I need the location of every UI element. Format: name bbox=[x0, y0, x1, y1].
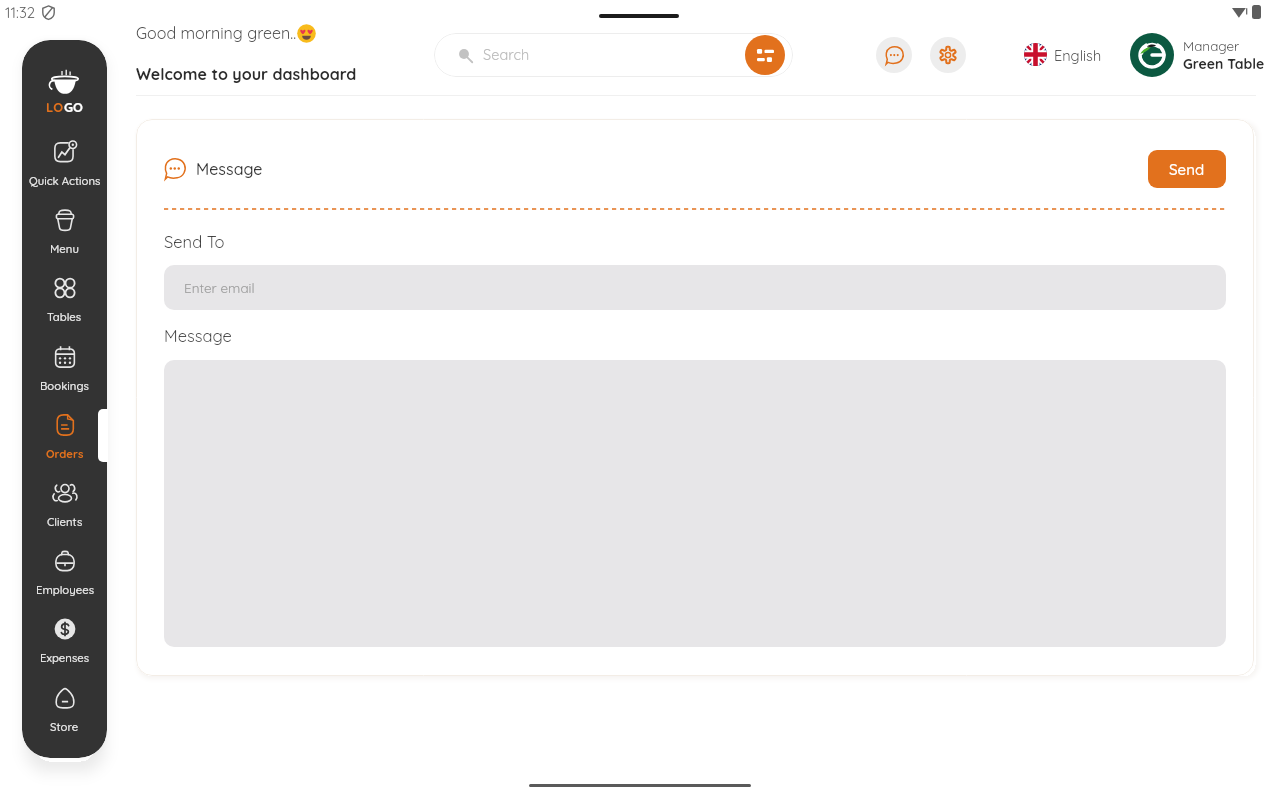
staticText: Search bbox=[483, 45, 530, 63]
staticText: Quick Actions bbox=[29, 174, 101, 188]
button[interactable]: Send bbox=[1148, 150, 1226, 188]
staticText: LO bbox=[46, 99, 64, 115]
staticText: Tables bbox=[47, 310, 82, 324]
button[interactable]: Filter bbox=[745, 35, 785, 75]
staticText: 11:32 bbox=[5, 3, 36, 22]
staticText: Message bbox=[164, 325, 232, 346]
staticText: Enter email bbox=[184, 279, 255, 296]
staticText: Bookings bbox=[40, 379, 89, 393]
staticText: Send To bbox=[164, 231, 225, 252]
staticText: Orders bbox=[46, 447, 84, 461]
button[interactable]: Bookings bbox=[22, 344, 107, 412]
button[interactable]: Tables bbox=[22, 275, 107, 343]
staticText: Send bbox=[1169, 160, 1205, 179]
staticText: Clients bbox=[47, 515, 83, 529]
button[interactable]: Clients bbox=[22, 480, 107, 548]
button[interactable]: English bbox=[1024, 43, 1102, 66]
button[interactable]: Orders bbox=[22, 412, 107, 480]
button[interactable]: Employees bbox=[22, 548, 107, 616]
staticText: English bbox=[1054, 46, 1102, 64]
staticText: Welcome to your dashboard bbox=[136, 64, 357, 84]
staticText: Manager bbox=[1183, 37, 1240, 54]
staticText: GO bbox=[64, 99, 83, 115]
button[interactable]: Menu bbox=[22, 207, 107, 275]
button[interactable]: Expenses bbox=[22, 616, 107, 684]
staticText: Green Table bbox=[1183, 55, 1265, 73]
staticText: Menu bbox=[50, 242, 79, 256]
button[interactable]: Search bbox=[434, 33, 793, 77]
staticText: Employees bbox=[36, 583, 94, 597]
staticText: Store bbox=[50, 720, 79, 734]
button[interactable]: Enter email bbox=[164, 265, 1226, 310]
button[interactable]: Settings bbox=[930, 37, 966, 73]
staticText: Expenses bbox=[40, 651, 90, 665]
button[interactable]: Manager bbox=[1130, 33, 1265, 77]
button[interactable]: Messages bbox=[876, 37, 912, 73]
staticText: Good morning green.. bbox=[136, 23, 297, 43]
button[interactable]: Quick Actions bbox=[22, 139, 107, 207]
staticText: Message bbox=[196, 159, 263, 179]
button[interactable]: Store bbox=[22, 685, 107, 753]
